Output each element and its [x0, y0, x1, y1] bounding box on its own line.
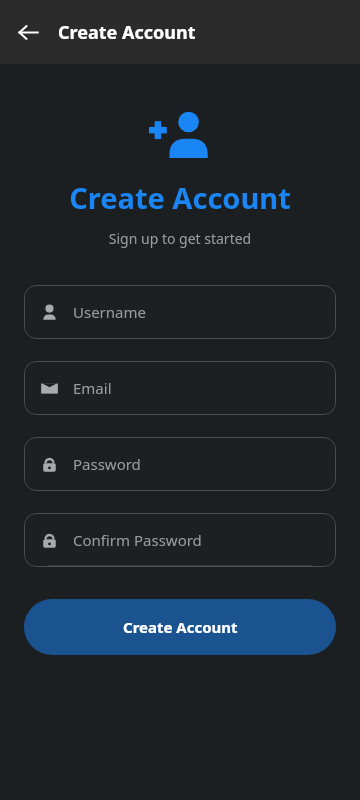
staticText: Username	[73, 302, 146, 322]
staticText: Create Account	[0, 178, 360, 217]
button[interactable]: Confirm Password	[24, 513, 336, 567]
button[interactable]: Back	[12, 16, 44, 48]
button[interactable]: Username	[24, 285, 336, 339]
staticText: Create Account	[58, 20, 196, 45]
staticText: Sign up to get started	[0, 229, 360, 248]
staticText: Email	[73, 378, 112, 398]
staticText: Confirm Password	[73, 530, 202, 550]
button[interactable]: Create Account	[24, 599, 336, 655]
staticText: Create Account	[123, 617, 238, 637]
button[interactable]: Password	[24, 437, 336, 491]
staticText: Password	[73, 454, 141, 474]
button[interactable]: Email	[24, 361, 336, 415]
